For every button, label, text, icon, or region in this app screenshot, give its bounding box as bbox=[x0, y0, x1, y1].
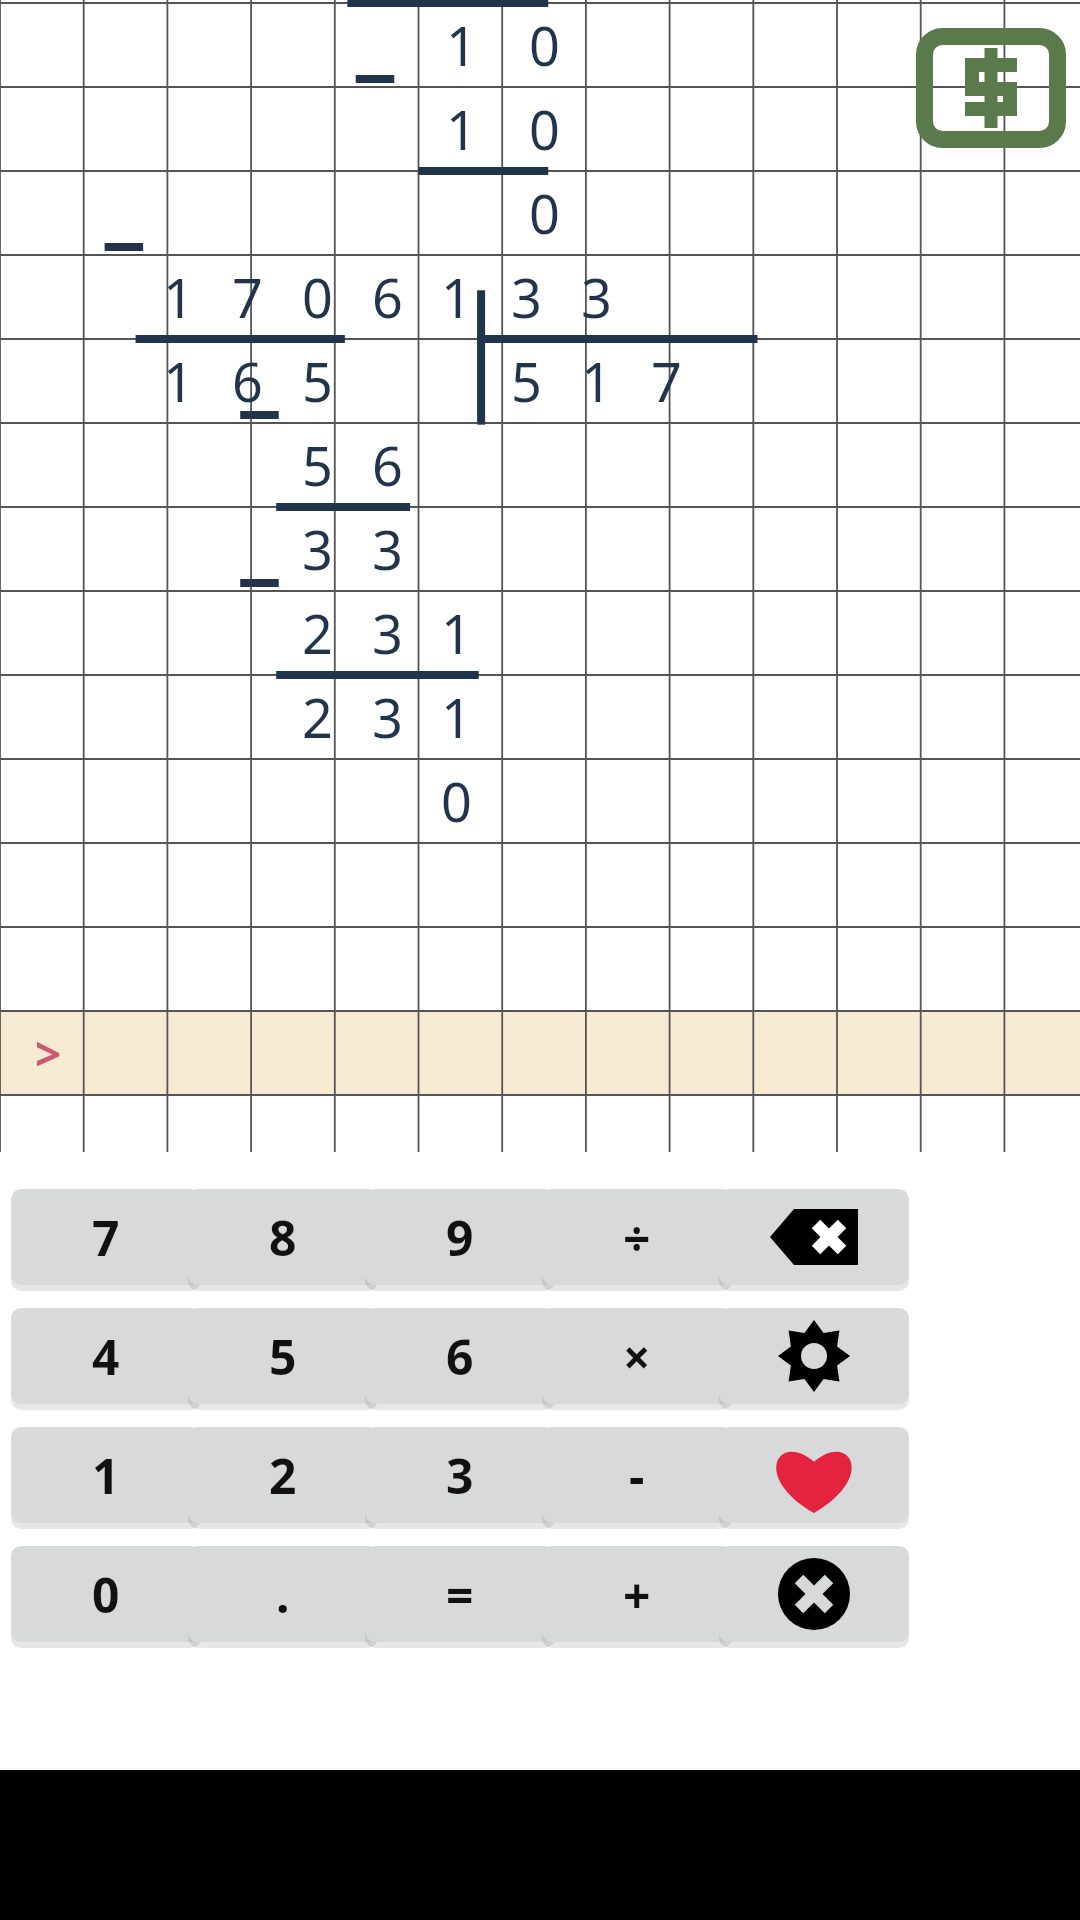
button[interactable]: = bbox=[365, 1546, 555, 1642]
staticText: = bbox=[446, 1562, 474, 1627]
staticText: 2 bbox=[302, 680, 333, 754]
staticText: 5 bbox=[302, 344, 333, 418]
staticText: 2 bbox=[269, 1443, 297, 1508]
button[interactable]: Current line bbox=[6, 1011, 90, 1095]
button[interactable]: 1 bbox=[11, 1427, 201, 1523]
button[interactable]: × bbox=[542, 1308, 732, 1404]
staticText: 7 bbox=[651, 344, 682, 418]
staticText: > bbox=[35, 1022, 62, 1085]
button[interactable]: Backspace bbox=[719, 1189, 909, 1285]
button[interactable]: + bbox=[542, 1546, 732, 1642]
staticText: 6 bbox=[372, 428, 403, 502]
staticText: 0 bbox=[302, 260, 333, 334]
staticText: 5 bbox=[269, 1324, 297, 1389]
button[interactable]: 5 bbox=[188, 1308, 378, 1404]
staticText: × bbox=[623, 1324, 651, 1389]
staticText: 2 bbox=[302, 596, 333, 670]
staticText: 8 bbox=[269, 1205, 297, 1270]
staticText: 7 bbox=[92, 1205, 120, 1270]
staticText: 1 bbox=[446, 92, 477, 166]
staticText: 5 bbox=[302, 428, 333, 502]
staticText: + bbox=[623, 1562, 651, 1627]
staticText: 6 bbox=[232, 344, 263, 418]
staticText: 1 bbox=[441, 596, 472, 670]
button[interactable]: - bbox=[542, 1427, 732, 1523]
button[interactable]: Close bbox=[719, 1546, 909, 1642]
staticText: 1 bbox=[92, 1443, 120, 1508]
button[interactable]: 4 bbox=[11, 1308, 201, 1404]
button[interactable]: 7 bbox=[11, 1189, 201, 1285]
staticText: 0 bbox=[529, 8, 560, 82]
staticText: - bbox=[629, 1443, 645, 1508]
button[interactable]: 3 bbox=[365, 1427, 555, 1523]
button[interactable]: Favourite bbox=[719, 1427, 909, 1523]
staticText: 0 bbox=[441, 764, 472, 838]
button[interactable]: 9 bbox=[365, 1189, 555, 1285]
staticText: 3 bbox=[581, 260, 612, 334]
button[interactable]: . bbox=[188, 1546, 378, 1642]
button[interactable]: Buy / premium bbox=[916, 28, 1066, 148]
staticText: . bbox=[276, 1562, 290, 1627]
staticText: 1 bbox=[163, 260, 194, 334]
staticText: 3 bbox=[302, 512, 333, 586]
staticText: 7 bbox=[232, 260, 263, 334]
staticText: 1 bbox=[163, 344, 194, 418]
staticText: 3 bbox=[511, 260, 542, 334]
button[interactable]: 2 bbox=[188, 1427, 378, 1523]
staticText: ÷ bbox=[623, 1205, 651, 1270]
staticText: 3 bbox=[372, 596, 403, 670]
staticText: 0 bbox=[529, 176, 560, 250]
staticText: 0 bbox=[92, 1562, 120, 1627]
button[interactable]: 0 bbox=[11, 1546, 201, 1642]
staticText: 3 bbox=[372, 680, 403, 754]
staticText: 1 bbox=[446, 8, 477, 82]
staticText: 1 bbox=[441, 260, 472, 334]
staticText: 5 bbox=[511, 344, 542, 418]
button[interactable]: 8 bbox=[188, 1189, 378, 1285]
button[interactable]: Settings bbox=[719, 1308, 909, 1404]
button[interactable]: 6 bbox=[365, 1308, 555, 1404]
staticText: 6 bbox=[372, 260, 403, 334]
staticText: 3 bbox=[372, 512, 403, 586]
staticText: 3 bbox=[446, 1443, 474, 1508]
staticText: 4 bbox=[92, 1324, 120, 1389]
staticText: 9 bbox=[446, 1205, 474, 1270]
staticText: 6 bbox=[446, 1324, 474, 1389]
staticText: 1 bbox=[581, 344, 612, 418]
staticText: 1 bbox=[441, 680, 472, 754]
button[interactable]: ÷ bbox=[542, 1189, 732, 1285]
staticText: 0 bbox=[529, 92, 560, 166]
